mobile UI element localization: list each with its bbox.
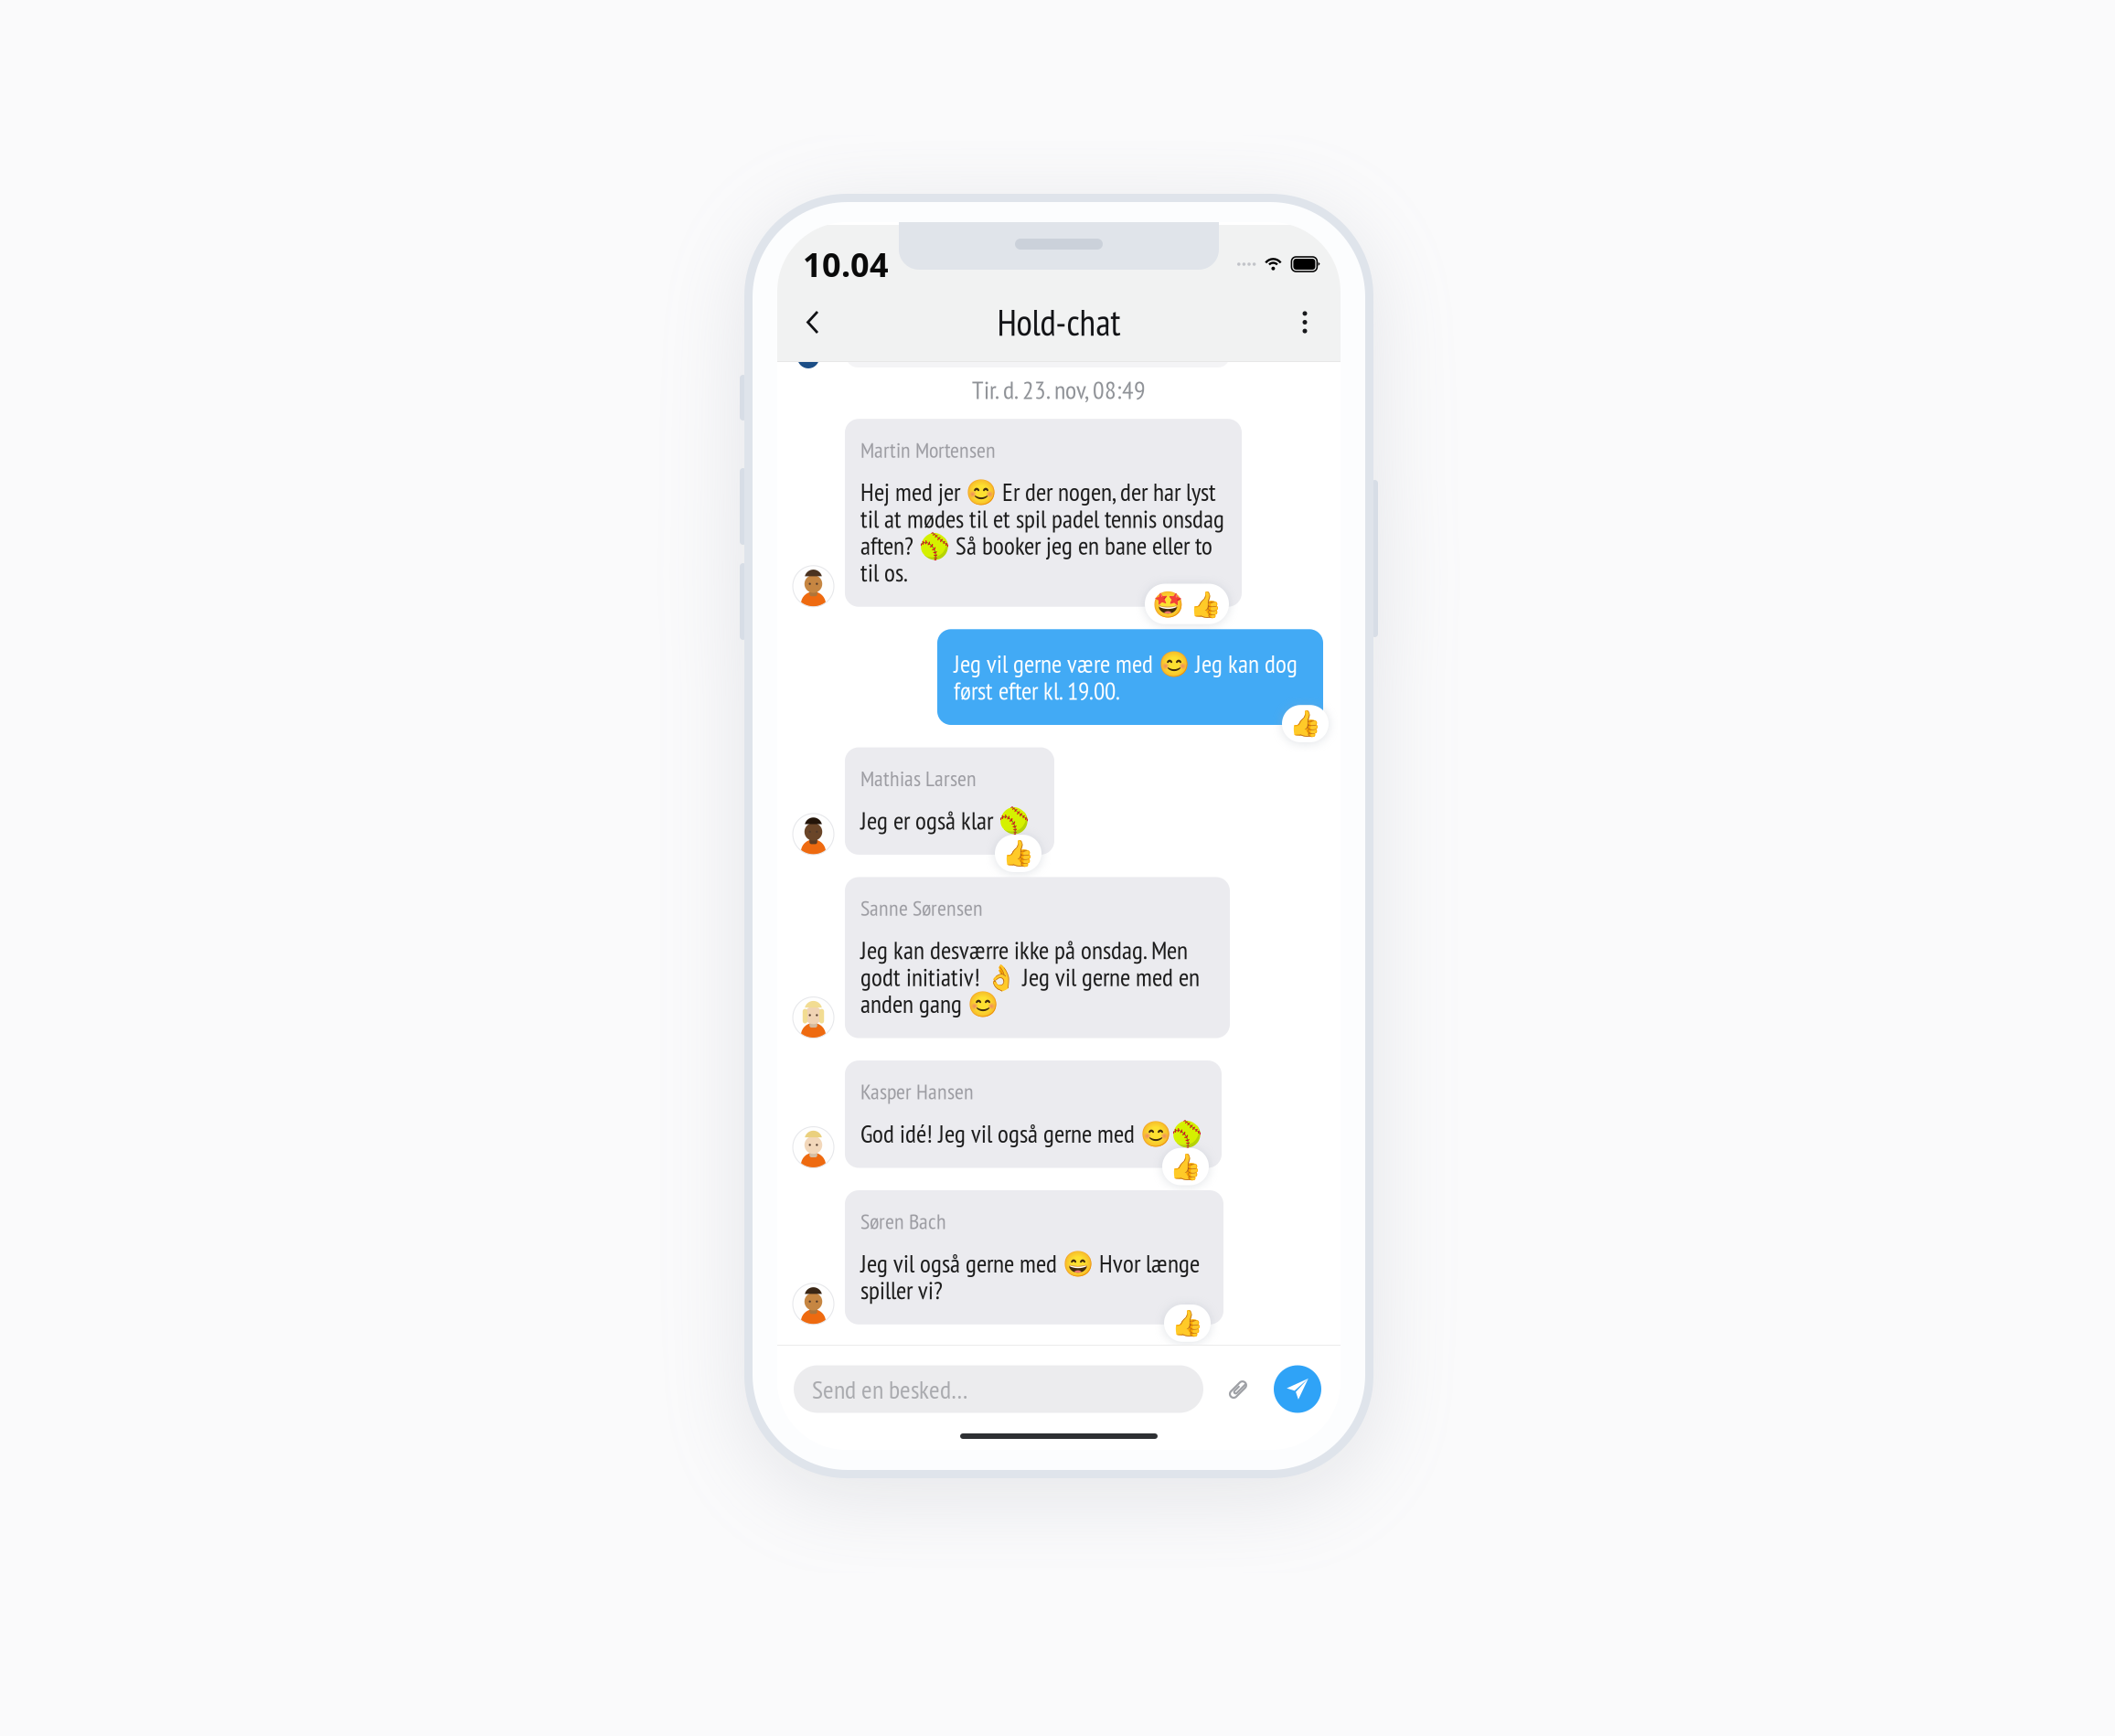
staticText: God idé! Jeg vil også gerne med 😊🥎 <box>860 1117 1202 1150</box>
staticText: 🤩 👍 <box>1152 587 1222 620</box>
staticText: Mathias Larsen <box>860 764 977 792</box>
button[interactable]: Back <box>788 283 838 361</box>
staticText: Jeg er også klar 🥎 <box>860 804 1030 836</box>
staticText: 👍 <box>1002 838 1034 868</box>
staticText: 👍 <box>1289 709 1321 739</box>
staticText: Hej med jer 😊 Er der nogen, der har lyst… <box>860 476 1224 589</box>
staticText: Jeg vil gerne være med 😊 Jeg kan dog før… <box>954 648 1298 707</box>
staticText: Kasper Hansen <box>860 1077 974 1105</box>
button[interactable]: More options <box>1280 283 1330 361</box>
button[interactable]: Attach file <box>1218 1365 1259 1413</box>
staticText: 10.04 <box>803 242 889 287</box>
staticText: 👍 <box>1170 1152 1202 1182</box>
staticText: Søren Bach <box>860 1207 946 1235</box>
button[interactable]: Send <box>1274 1365 1321 1413</box>
button[interactable]: Send en besked… <box>794 1365 1203 1413</box>
staticText: Martin Mortensen <box>860 435 996 464</box>
staticText: 👍 <box>1171 1308 1203 1338</box>
staticText: Tir. d. 23. nov, 08:49 <box>972 373 1146 406</box>
staticText: Hold-chat <box>997 299 1121 346</box>
staticText: Jeg kan desværre ikke på onsdag. Men god… <box>860 934 1200 1020</box>
staticText: Send en besked… <box>812 1373 967 1406</box>
staticText: Jeg vil også gerne med 😄 Hvor længe spil… <box>860 1247 1200 1306</box>
staticText: Sanne Sørensen <box>860 894 983 922</box>
